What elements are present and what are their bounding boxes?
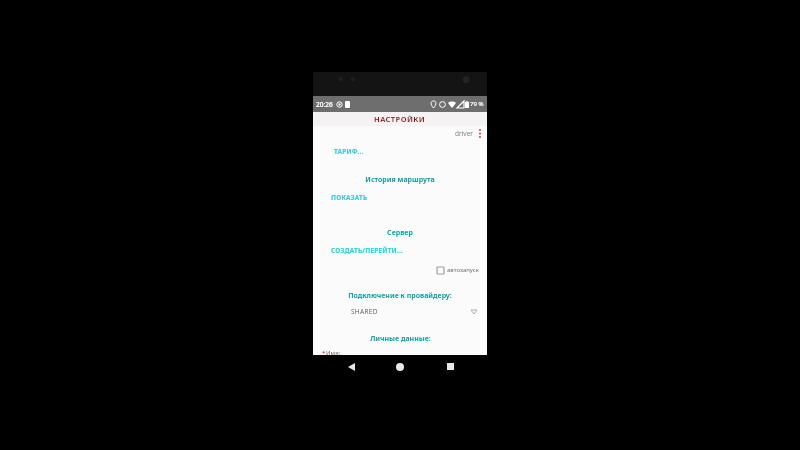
staticText: Подключение к провайдеру: bbox=[348, 291, 452, 301]
staticText: ПОКАЗАТЬ bbox=[331, 193, 368, 202]
button[interactable]: More options bbox=[477, 127, 483, 139]
staticText: Сервер bbox=[387, 228, 413, 238]
staticText: ТАРИФ... bbox=[334, 147, 364, 156]
staticText: * bbox=[322, 349, 326, 355]
button[interactable]: ТАРИФ... bbox=[334, 147, 487, 156]
button[interactable]: Home bbox=[388, 355, 412, 378]
staticText: История маршрута bbox=[365, 175, 435, 185]
button[interactable]: Подключение к провайдеру: bbox=[313, 291, 487, 301]
button[interactable]: Recents bbox=[438, 355, 462, 378]
staticText: driver bbox=[455, 129, 474, 138]
button[interactable]: Сервер bbox=[313, 228, 487, 238]
button[interactable]: Back bbox=[339, 355, 363, 378]
button[interactable]: История маршрута bbox=[313, 175, 487, 185]
staticText: СОЗДАТЬ/ПЕРЕЙТИ... bbox=[331, 246, 404, 255]
button[interactable]: автозапуск bbox=[437, 266, 479, 274]
staticText: НАСТРОЙКИ bbox=[374, 114, 426, 124]
button[interactable]: SHARED bbox=[351, 307, 477, 316]
button[interactable]: ПОКАЗАТЬ bbox=[331, 193, 487, 202]
staticText: Имя: bbox=[326, 349, 341, 355]
button[interactable]: Личные данные: bbox=[313, 334, 487, 344]
staticText: Личные данные: bbox=[370, 334, 431, 344]
staticText: SHARED bbox=[351, 307, 378, 316]
staticText: автозапуск bbox=[447, 266, 479, 274]
staticText: 20:26 bbox=[316, 100, 333, 109]
staticText: 79 % bbox=[470, 100, 484, 108]
button[interactable]: СОЗДАТЬ/ПЕРЕЙТИ... bbox=[331, 246, 487, 255]
